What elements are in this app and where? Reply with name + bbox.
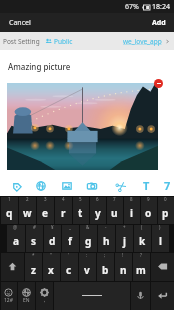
staticText: 18:24 [152, 2, 170, 12]
button[interactable]: ? [132, 252, 150, 281]
staticText: z [31, 263, 36, 277]
staticText: g [85, 234, 92, 248]
staticText: 6 [96, 196, 99, 202]
button[interactable]: Text [135, 175, 157, 196]
staticText: ¥ [51, 224, 54, 230]
staticText: f [68, 234, 72, 248]
staticText: n [120, 263, 127, 277]
button[interactable]: _ [61, 224, 79, 252]
button[interactable]: Camera [81, 175, 103, 196]
staticText: c [66, 263, 72, 277]
button[interactable]: @ [6, 224, 25, 252]
button[interactable]: Gallery [56, 175, 78, 196]
staticText: x [48, 263, 54, 277]
staticText: l [159, 234, 162, 248]
staticText: Amazing picture [8, 61, 71, 72]
staticText: p [162, 206, 169, 220]
button[interactable]: ) [151, 224, 169, 252]
button[interactable]: 4 [54, 196, 72, 224]
button[interactable]: Language [17, 281, 35, 310]
staticText: 9 [147, 196, 150, 202]
button[interactable]: - [97, 224, 115, 252]
button[interactable]: 0 [157, 196, 174, 224]
button[interactable]: : [78, 252, 96, 281]
staticText: 5 [79, 196, 82, 202]
staticText: # [33, 224, 36, 230]
staticText: 12# [4, 297, 13, 304]
button[interactable]: + [115, 224, 133, 252]
staticText: e [42, 206, 48, 220]
button[interactable]: Cancel [0, 14, 40, 32]
staticText: r [61, 206, 66, 220]
staticText: 2 [26, 196, 29, 202]
staticText: - [105, 224, 107, 230]
button[interactable]: Tag [5, 175, 27, 196]
staticText: : [86, 252, 88, 258]
button[interactable]: 2 [18, 196, 36, 224]
button[interactable]: ¥ [43, 224, 61, 252]
staticText: Post Setting [3, 37, 40, 46]
button[interactable]: # [25, 224, 43, 252]
button[interactable]: Post Setting [0, 32, 174, 50]
staticText: 1 [8, 196, 11, 202]
button[interactable]: Settings [35, 281, 53, 310]
button[interactable]: 9 [140, 196, 157, 224]
button[interactable]: ' [60, 252, 78, 281]
button[interactable]: Location [30, 175, 52, 196]
button[interactable]: 1 [0, 196, 18, 224]
staticText: ) [159, 224, 161, 230]
staticText: o [145, 206, 152, 220]
button[interactable]: 5 [72, 196, 89, 224]
button[interactable]: Backspace [150, 252, 174, 281]
staticText: ? [140, 252, 142, 258]
button[interactable]: ; [96, 252, 114, 281]
staticText: 4 [62, 196, 65, 202]
staticText: v [84, 263, 90, 277]
staticText: s [31, 234, 37, 248]
staticText: + [123, 224, 126, 230]
staticText: Cancel [9, 18, 31, 28]
staticText: d [49, 234, 56, 248]
staticText: y [95, 206, 101, 220]
button[interactable]: ! [114, 252, 132, 281]
staticText: b [102, 263, 109, 277]
staticText: 8 [130, 196, 133, 202]
button[interactable]: Enter [150, 281, 174, 310]
staticText: EN [23, 297, 30, 304]
staticText: t [78, 206, 83, 220]
staticText: j [123, 234, 126, 248]
staticText: 7 [164, 178, 171, 193]
staticText: 67% [125, 2, 139, 12]
staticText: ! [122, 252, 124, 258]
staticText: * [32, 252, 35, 258]
button[interactable]: Shift [0, 252, 24, 281]
staticText: m [136, 263, 146, 277]
button[interactable]: Voice input [130, 281, 150, 310]
staticText: i [130, 206, 133, 220]
button[interactable]: Symbols [0, 281, 17, 310]
button[interactable]: Space [53, 281, 130, 310]
button[interactable]: Add [144, 14, 174, 32]
staticText: T [143, 178, 150, 193]
staticText: ( [141, 224, 143, 230]
staticText: 7 [113, 196, 116, 202]
staticText: @ [13, 224, 18, 230]
button[interactable]: & [79, 224, 97, 252]
staticText: ; [104, 252, 106, 258]
button[interactable]: 8 [123, 196, 140, 224]
button[interactable]: 3 [36, 196, 54, 224]
staticText: 0 [164, 196, 167, 202]
button[interactable]: Sticker [156, 175, 174, 196]
staticText: 3 [44, 196, 47, 202]
button[interactable]: * [24, 252, 42, 281]
button[interactable]: ( [133, 224, 151, 252]
staticText: _ [69, 224, 71, 230]
staticText: h [103, 234, 110, 248]
staticText: ' [68, 252, 70, 258]
button[interactable]: Remove photo [154, 79, 163, 88]
staticText: " [50, 252, 52, 258]
button[interactable]: " [42, 252, 60, 281]
button[interactable]: Trim [110, 175, 132, 196]
button[interactable]: 6 [89, 196, 106, 224]
button[interactable]: 7 [106, 196, 123, 224]
